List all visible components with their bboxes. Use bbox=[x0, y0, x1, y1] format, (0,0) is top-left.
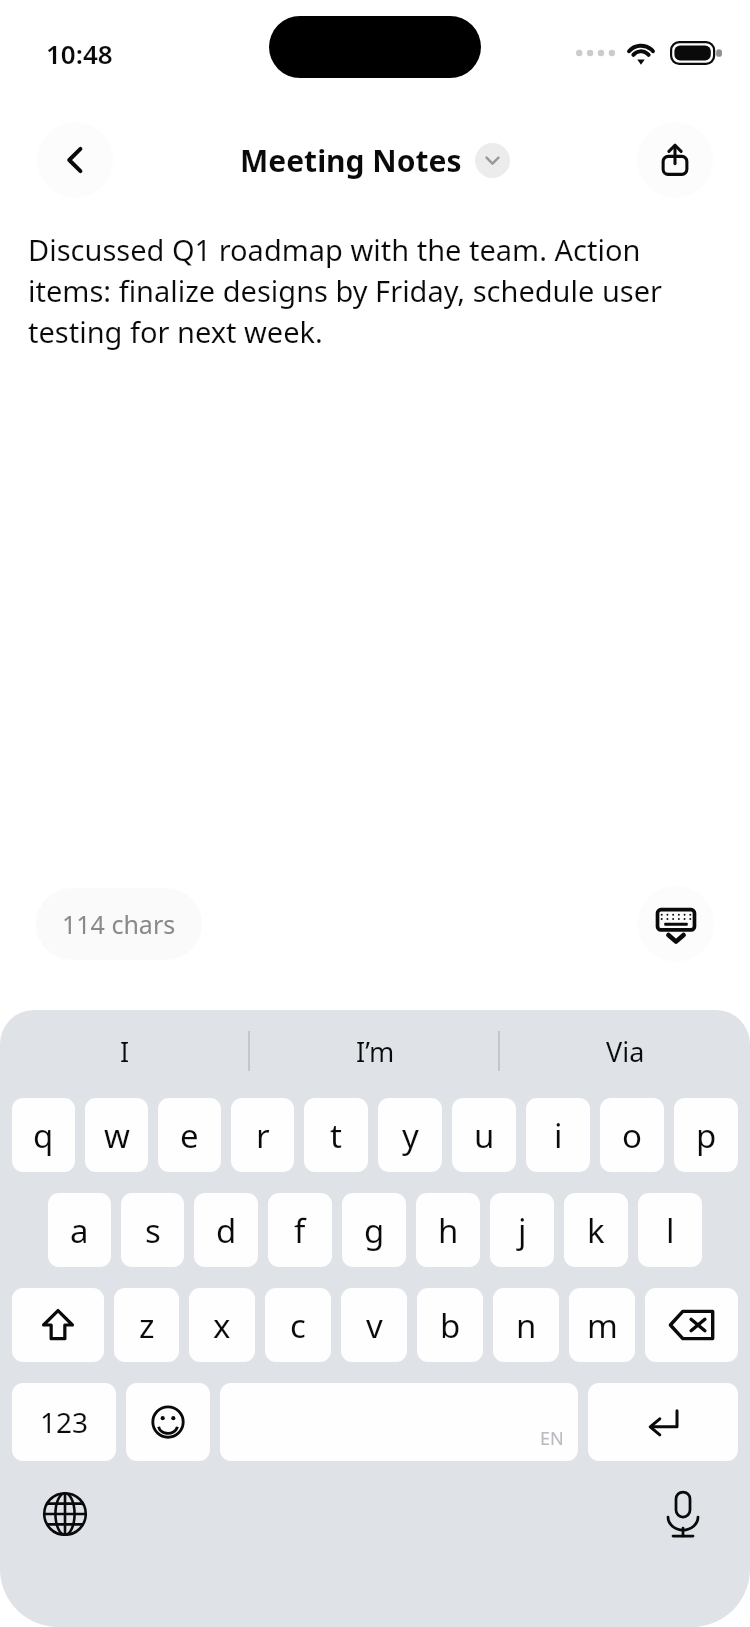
button[interactable]: c bbox=[265, 1288, 331, 1362]
staticText: x bbox=[213, 1303, 231, 1348]
button[interactable]: I’m bbox=[250, 1010, 500, 1092]
button[interactable]: f bbox=[268, 1193, 332, 1267]
staticText: i bbox=[554, 1113, 563, 1158]
staticText: I’m bbox=[356, 1033, 395, 1070]
staticText: d bbox=[216, 1208, 237, 1253]
staticText: j bbox=[518, 1208, 527, 1253]
staticText: EN bbox=[540, 1426, 564, 1451]
button[interactable]: y bbox=[378, 1098, 442, 1172]
button[interactable]: i bbox=[526, 1098, 590, 1172]
staticText: s bbox=[145, 1208, 161, 1253]
staticText: Discussed Q1 roadmap with the team. Acti… bbox=[28, 230, 722, 352]
button[interactable]: d bbox=[194, 1193, 258, 1267]
button[interactable]: t bbox=[304, 1098, 368, 1172]
button[interactable]: g bbox=[342, 1193, 406, 1267]
button[interactable]: 123 bbox=[12, 1383, 116, 1461]
button[interactable]: Return bbox=[588, 1383, 738, 1461]
button[interactable]: Space bbox=[220, 1383, 578, 1461]
button[interactable]: m bbox=[569, 1288, 635, 1362]
staticText: k bbox=[587, 1208, 605, 1253]
button[interactable]: e bbox=[158, 1098, 221, 1172]
staticText: w bbox=[104, 1113, 130, 1158]
button[interactable]: l bbox=[638, 1193, 702, 1267]
staticText: q bbox=[33, 1113, 54, 1158]
staticText: e bbox=[180, 1113, 199, 1158]
staticText: o bbox=[622, 1113, 642, 1158]
button[interactable]: Via bbox=[500, 1010, 750, 1092]
button[interactable]: n bbox=[493, 1288, 559, 1362]
button[interactable]: o bbox=[600, 1098, 664, 1172]
button[interactable]: j bbox=[490, 1193, 554, 1267]
staticText: a bbox=[70, 1208, 89, 1253]
staticText: u bbox=[474, 1113, 495, 1158]
button[interactable]: Shift bbox=[12, 1288, 104, 1362]
staticText: n bbox=[516, 1303, 537, 1348]
staticText: p bbox=[696, 1113, 717, 1158]
button[interactable]: Hide keyboard bbox=[638, 886, 714, 962]
button[interactable]: v bbox=[341, 1288, 407, 1362]
staticText: r bbox=[256, 1113, 270, 1158]
button[interactable]: s bbox=[121, 1193, 184, 1267]
staticText: 10:48 bbox=[46, 36, 113, 71]
staticText: h bbox=[438, 1208, 459, 1253]
staticText: b bbox=[440, 1303, 461, 1348]
button[interactable]: Voice input bbox=[654, 1485, 712, 1543]
staticText: v bbox=[366, 1303, 383, 1348]
button[interactable]: Backspace bbox=[645, 1288, 738, 1362]
button[interactable]: k bbox=[564, 1193, 628, 1267]
button[interactable]: Share bbox=[637, 122, 713, 198]
button[interactable]: Back bbox=[37, 122, 113, 198]
staticText: 123 bbox=[40, 1403, 89, 1441]
button[interactable]: p bbox=[674, 1098, 738, 1172]
staticText: Meeting Notes bbox=[240, 140, 462, 181]
button[interactable]: w bbox=[85, 1098, 148, 1172]
button[interactable]: 114 chars bbox=[36, 888, 202, 960]
button[interactable]: More options bbox=[475, 143, 510, 178]
button[interactable]: Emoji bbox=[126, 1383, 210, 1461]
button[interactable]: h bbox=[416, 1193, 480, 1267]
staticText: 114 chars bbox=[62, 907, 176, 941]
button[interactable]: a bbox=[48, 1193, 111, 1267]
button[interactable]: r bbox=[231, 1098, 294, 1172]
staticText: m bbox=[587, 1303, 618, 1348]
staticText: c bbox=[290, 1303, 306, 1348]
button[interactable]: x bbox=[189, 1288, 255, 1362]
staticText: l bbox=[666, 1208, 675, 1253]
button[interactable]: b bbox=[417, 1288, 483, 1362]
button[interactable]: z bbox=[114, 1288, 179, 1362]
staticText: y bbox=[402, 1113, 419, 1158]
staticText: f bbox=[294, 1208, 306, 1253]
staticText: I bbox=[120, 1033, 130, 1070]
button[interactable]: q bbox=[12, 1098, 75, 1172]
staticText: Via bbox=[606, 1033, 645, 1070]
button[interactable]: Change language bbox=[36, 1485, 94, 1543]
staticText: t bbox=[330, 1113, 342, 1158]
button[interactable]: u bbox=[452, 1098, 516, 1172]
button[interactable]: I bbox=[0, 1010, 250, 1092]
staticText: g bbox=[364, 1208, 385, 1253]
staticText: z bbox=[139, 1303, 155, 1348]
